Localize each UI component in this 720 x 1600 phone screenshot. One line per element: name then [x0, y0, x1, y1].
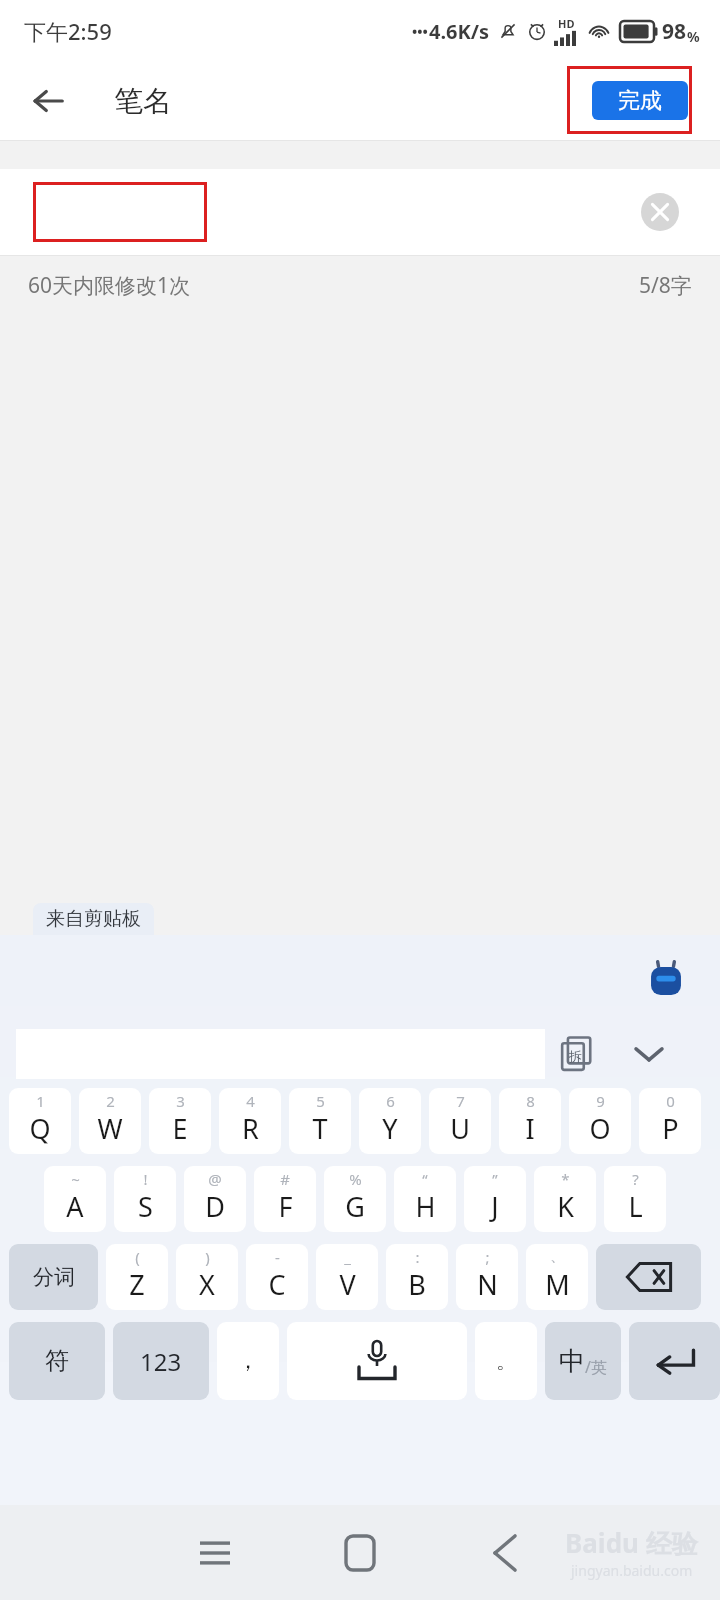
button[interactable]: !	[114, 1166, 176, 1232]
button[interactable]: _	[316, 1244, 378, 1310]
button[interactable]: Backspace	[596, 1244, 701, 1310]
staticText: Z	[129, 1266, 145, 1303]
staticText: C	[268, 1266, 286, 1303]
staticText: V	[339, 1266, 356, 1303]
button[interactable]: %	[324, 1166, 386, 1232]
button[interactable]: 1	[9, 1088, 71, 1154]
button[interactable]: 中	[545, 1322, 621, 1400]
button[interactable]: 9	[569, 1088, 631, 1154]
button[interactable]: 5	[289, 1088, 351, 1154]
button[interactable]: Enter	[629, 1322, 720, 1400]
staticText: ?	[632, 1169, 639, 1189]
button[interactable]: Recents	[183, 1521, 247, 1585]
button[interactable]: Clear text	[638, 190, 682, 234]
staticText: W	[97, 1110, 123, 1147]
staticText: 60天内限修改1次	[28, 271, 191, 300]
staticText: 8	[526, 1091, 535, 1111]
staticText: •••	[412, 22, 428, 41]
button[interactable]: 拆	[555, 1031, 601, 1077]
button[interactable]: 、	[526, 1244, 588, 1310]
button[interactable]: ~	[44, 1166, 106, 1232]
staticText: J	[491, 1188, 499, 1225]
button[interactable]: Home	[328, 1521, 392, 1585]
staticText: 0	[666, 1091, 675, 1111]
button[interactable]: 完成	[592, 81, 688, 120]
button[interactable]: )	[176, 1244, 238, 1310]
staticText: D	[205, 1188, 225, 1225]
staticText: 4	[246, 1091, 255, 1111]
button[interactable]: Space, voice input	[287, 1322, 467, 1400]
staticText: R	[242, 1110, 259, 1147]
button[interactable]: ;	[456, 1244, 518, 1310]
staticText: %	[687, 27, 700, 46]
staticText: 、	[550, 1247, 565, 1266]
button[interactable]: #	[254, 1166, 316, 1232]
button[interactable]: 6	[359, 1088, 421, 1154]
button[interactable]: 0	[639, 1088, 701, 1154]
button[interactable]: 。	[475, 1322, 537, 1400]
staticText: 123	[140, 1345, 182, 1378]
button[interactable]: (	[106, 1244, 168, 1310]
staticText: 1	[36, 1091, 45, 1111]
staticText: F	[278, 1188, 293, 1225]
staticText: 下午2:59	[24, 16, 112, 46]
button[interactable]: 来自剪贴板	[33, 903, 154, 935]
staticText: L	[628, 1188, 643, 1225]
staticText: 5/8字	[639, 271, 692, 300]
staticText: 分词	[33, 1264, 75, 1290]
button[interactable]: 123	[113, 1322, 209, 1400]
staticText: 9	[596, 1091, 605, 1111]
staticText: jingyan.baidu.com	[571, 1561, 693, 1580]
button[interactable]: @	[184, 1166, 246, 1232]
button[interactable]: 符	[9, 1322, 105, 1400]
staticText: 5	[316, 1091, 325, 1111]
staticText: Y	[382, 1110, 398, 1147]
button[interactable]: ”	[464, 1166, 526, 1232]
button[interactable]: Back	[473, 1521, 537, 1585]
staticText: B	[408, 1266, 426, 1303]
button[interactable]: Assistant	[642, 957, 690, 1005]
staticText: _	[344, 1247, 351, 1267]
staticText: 符	[45, 1346, 69, 1376]
staticText: A	[66, 1188, 84, 1225]
button[interactable]: Back	[22, 75, 74, 127]
button[interactable]: ，	[217, 1322, 279, 1400]
button[interactable]	[33, 182, 207, 242]
button[interactable]: 2	[79, 1088, 141, 1154]
button[interactable]: -	[246, 1244, 308, 1310]
button[interactable]: “	[394, 1166, 456, 1232]
staticText: E	[172, 1110, 188, 1147]
staticText: @	[208, 1169, 222, 1189]
staticText: T	[312, 1110, 328, 1147]
button[interactable]: 3	[149, 1088, 211, 1154]
staticText: 完成	[618, 87, 662, 115]
staticText: 4.6K/s	[429, 18, 490, 45]
button[interactable]: 4	[219, 1088, 281, 1154]
staticText: 6	[386, 1091, 395, 1111]
button[interactable]: ?	[604, 1166, 666, 1232]
staticText: K	[557, 1188, 574, 1225]
staticText: 来自剪贴板	[46, 907, 141, 931]
button[interactable]: 7	[429, 1088, 491, 1154]
staticText: ;	[485, 1247, 490, 1267]
staticText: U	[450, 1110, 470, 1147]
staticText: 3	[176, 1091, 185, 1111]
staticText: G	[345, 1188, 365, 1225]
staticText: -	[275, 1247, 280, 1267]
button[interactable]: Hide keyboard	[623, 1028, 675, 1080]
staticText: S	[138, 1188, 153, 1225]
staticText: (	[135, 1247, 140, 1267]
staticText: Q	[29, 1110, 51, 1147]
staticText: Baidu 经验	[565, 1525, 698, 1561]
staticText: N	[477, 1266, 498, 1303]
button[interactable]: 8	[499, 1088, 561, 1154]
staticText: ，	[237, 1347, 259, 1375]
button[interactable]: :	[386, 1244, 448, 1310]
staticText: 笔名	[114, 83, 172, 120]
button[interactable]: *	[534, 1166, 596, 1232]
staticText: I	[525, 1110, 535, 1147]
staticText: HD	[558, 16, 575, 31]
staticText: ~	[71, 1169, 80, 1189]
button[interactable]: 分词	[9, 1244, 98, 1310]
